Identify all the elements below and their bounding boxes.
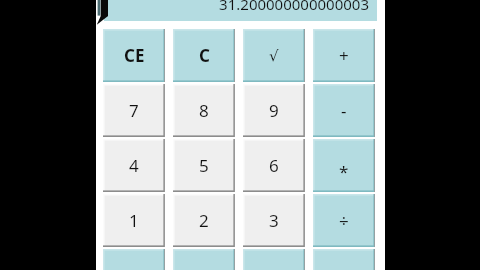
staticText: 1 — [129, 209, 139, 232]
staticText: - — [341, 99, 347, 122]
staticText: * — [339, 160, 349, 183]
staticText: 7 — [129, 99, 139, 122]
staticText: 2 — [199, 209, 209, 232]
staticText: 3 — [269, 209, 279, 232]
button[interactable]: Multiply — [313, 139, 375, 192]
button[interactable]: 9 — [243, 84, 305, 137]
button[interactable]: Key — [173, 249, 235, 270]
button[interactable]: Plus — [313, 29, 375, 82]
staticText: 4 — [129, 154, 139, 177]
button[interactable]: Divide — [313, 194, 375, 247]
staticText: CE — [124, 44, 145, 67]
button[interactable]: 7 — [103, 84, 165, 137]
button[interactable]: 1 — [103, 194, 165, 247]
staticText: 31.200000000000003 — [219, 0, 369, 14]
staticText: + — [339, 44, 349, 67]
button[interactable]: Minus — [313, 84, 375, 137]
staticText: ÷ — [339, 209, 349, 232]
staticText: 6 — [269, 154, 279, 177]
button[interactable]: Key — [243, 249, 305, 270]
button[interactable]: C — [173, 29, 235, 82]
staticText: C — [199, 44, 210, 67]
button[interactable]: 4 — [103, 139, 165, 192]
button[interactable]: 8 — [173, 84, 235, 137]
button[interactable]: 3 — [243, 194, 305, 247]
staticText: 8 — [199, 99, 209, 122]
button[interactable]: CE — [103, 29, 165, 82]
staticText: 5 — [199, 154, 209, 177]
button[interactable]: 6 — [243, 139, 305, 192]
staticText: 9 — [269, 99, 279, 122]
button[interactable]: Square root — [243, 29, 305, 82]
button[interactable]: 5 — [173, 139, 235, 192]
staticText: √ — [269, 47, 279, 64]
button[interactable]: Key — [313, 249, 375, 270]
button[interactable]: Key — [103, 249, 165, 270]
button[interactable]: 2 — [173, 194, 235, 247]
